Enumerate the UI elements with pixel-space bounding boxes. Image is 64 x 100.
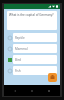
button[interactable]: Bird xyxy=(7,55,57,64)
button[interactable]: Back xyxy=(9,85,21,96)
button[interactable]: Fish xyxy=(7,66,57,75)
staticText: What is the capital of Germany? xyxy=(9,13,54,17)
button[interactable]: Mammal xyxy=(7,44,57,53)
staticText: Bird xyxy=(15,58,21,62)
staticText: Mammal xyxy=(15,47,28,51)
button[interactable]: Submit answer xyxy=(48,73,57,82)
button[interactable]: Recent apps xyxy=(43,85,55,96)
button[interactable]: What is the capital of Germany? xyxy=(7,11,57,30)
button[interactable]: Home xyxy=(26,85,38,96)
button[interactable]: Reptile xyxy=(7,33,57,42)
staticText: Fish xyxy=(15,69,21,73)
staticText: Reptile xyxy=(15,36,25,40)
